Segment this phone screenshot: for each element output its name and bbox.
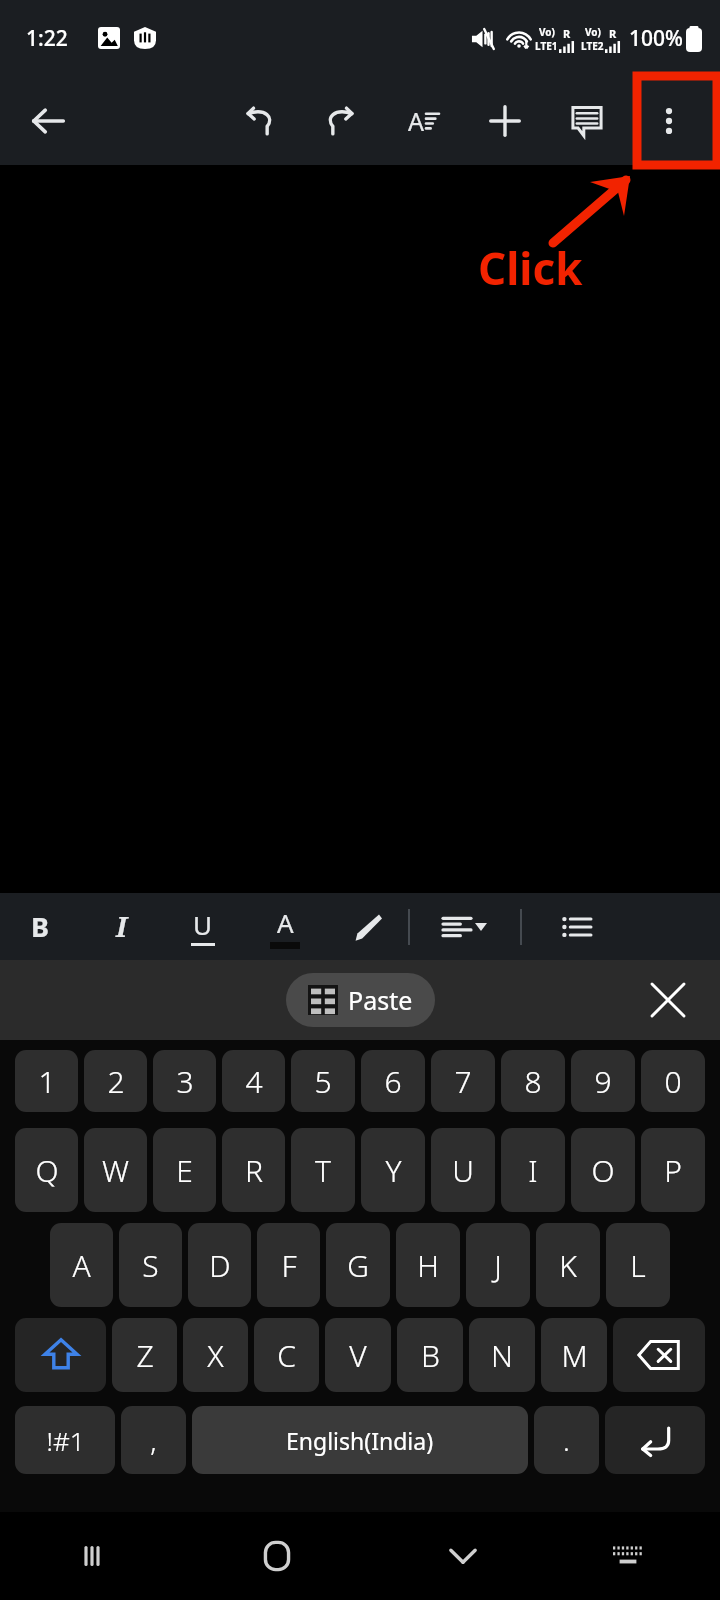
- staticText: U: [452, 1150, 474, 1191]
- button[interactable]: O: [571, 1128, 635, 1212]
- staticText: 7: [454, 1061, 472, 1102]
- staticText: D: [209, 1245, 231, 1286]
- button[interactable]: Bold: [0, 893, 80, 960]
- button[interactable]: M: [541, 1318, 607, 1392]
- staticText: 3: [176, 1061, 194, 1102]
- button[interactable]: 0: [641, 1050, 705, 1112]
- staticText: 0: [664, 1061, 682, 1102]
- staticText: P: [664, 1150, 682, 1191]
- staticText: S: [142, 1245, 159, 1286]
- button[interactable]: List: [522, 893, 632, 960]
- button[interactable]: Redo: [300, 76, 382, 165]
- button[interactable]: X: [183, 1318, 248, 1392]
- staticText: 1:22: [26, 24, 68, 53]
- button[interactable]: A: [50, 1223, 113, 1307]
- button[interactable]: More options: [628, 76, 710, 165]
- staticText: Q: [35, 1150, 59, 1191]
- staticText: A: [408, 104, 424, 138]
- button[interactable]: 8: [501, 1050, 565, 1112]
- button[interactable]: Home: [174, 1512, 380, 1600]
- staticText: F: [281, 1245, 297, 1286]
- button[interactable]: C: [254, 1318, 319, 1392]
- button[interactable]: 6: [361, 1050, 425, 1112]
- button[interactable]: 3: [153, 1050, 216, 1112]
- staticText: Click: [478, 238, 583, 298]
- staticText: ,: [150, 1421, 157, 1459]
- button[interactable]: Backspace: [613, 1318, 705, 1392]
- staticText: U: [193, 907, 213, 942]
- staticText: T: [315, 1150, 331, 1191]
- button[interactable]: S: [119, 1223, 182, 1307]
- button[interactable]: Highlight: [326, 893, 408, 960]
- button[interactable]: V: [325, 1318, 391, 1392]
- button[interactable]: English(India): [192, 1406, 528, 1474]
- button[interactable]: Underline: [162, 893, 244, 960]
- staticText: M: [561, 1335, 588, 1376]
- button[interactable]: 9: [571, 1050, 635, 1112]
- button[interactable]: D: [188, 1223, 251, 1307]
- button[interactable]: Paste: [286, 973, 435, 1027]
- button[interactable]: L: [606, 1223, 670, 1307]
- staticText: English(India): [286, 1425, 434, 1456]
- button[interactable]: G: [326, 1223, 390, 1307]
- button[interactable]: Keyboard layout: [545, 1512, 710, 1600]
- button[interactable]: R: [222, 1128, 285, 1212]
- button[interactable]: 5: [291, 1050, 355, 1112]
- button[interactable]: E: [153, 1128, 216, 1212]
- button[interactable]: T: [291, 1128, 355, 1212]
- button[interactable]: Undo: [218, 76, 300, 165]
- button[interactable]: H: [396, 1223, 460, 1307]
- staticText: E: [176, 1150, 193, 1191]
- staticText: X: [207, 1335, 224, 1376]
- button[interactable]: Text formatting: [382, 76, 464, 165]
- button[interactable]: Insert: [464, 76, 546, 165]
- button[interactable]: W: [84, 1128, 147, 1212]
- button[interactable]: ,: [121, 1406, 186, 1474]
- staticText: K: [559, 1245, 577, 1286]
- button[interactable]: 4: [222, 1050, 285, 1112]
- button[interactable]: K: [536, 1223, 600, 1307]
- button[interactable]: Shift: [15, 1318, 106, 1392]
- button[interactable]: J: [466, 1223, 530, 1307]
- button[interactable]: Q: [15, 1128, 78, 1212]
- button[interactable]: P: [641, 1128, 705, 1212]
- button[interactable]: !#1: [15, 1406, 115, 1474]
- staticText: 9: [594, 1061, 612, 1102]
- button[interactable]: 1: [15, 1050, 78, 1112]
- staticText: B: [421, 1335, 440, 1376]
- staticText: Paste: [348, 983, 413, 1017]
- button[interactable]: 7: [431, 1050, 495, 1112]
- button[interactable]: 2: [84, 1050, 147, 1112]
- button[interactable]: Y: [361, 1128, 425, 1212]
- button[interactable]: N: [469, 1318, 535, 1392]
- staticText: I: [528, 1150, 538, 1191]
- button[interactable]: U: [431, 1128, 495, 1212]
- button[interactable]: Italic: [80, 893, 162, 960]
- button[interactable]: F: [257, 1223, 320, 1307]
- staticText: Vo): [585, 25, 601, 39]
- button[interactable]: Hide keyboard: [380, 1512, 545, 1600]
- button[interactable]: Alignment: [410, 893, 520, 960]
- button[interactable]: I: [501, 1128, 565, 1212]
- button[interactable]: Text color: [244, 893, 326, 960]
- button[interactable]: Comment: [546, 76, 628, 165]
- button[interactable]: Close: [642, 974, 694, 1026]
- staticText: N: [491, 1335, 513, 1376]
- staticText: Z: [136, 1335, 154, 1376]
- staticText: C: [277, 1335, 296, 1376]
- staticText: .: [563, 1421, 570, 1459]
- button[interactable]: .: [534, 1406, 599, 1474]
- staticText: 8: [524, 1061, 542, 1102]
- staticText: R: [245, 1150, 263, 1191]
- button[interactable]: Z: [112, 1318, 177, 1392]
- button[interactable]: B: [397, 1318, 463, 1392]
- staticText: Vo): [539, 25, 555, 39]
- button[interactable]: Back: [16, 89, 80, 153]
- staticText: 6: [384, 1061, 402, 1102]
- staticText: !#1: [46, 1423, 85, 1458]
- button[interactable]: Recents: [10, 1512, 174, 1600]
- button[interactable]: Enter: [605, 1406, 705, 1474]
- staticText: G: [347, 1245, 369, 1286]
- staticText: R: [609, 26, 617, 41]
- staticText: R: [563, 26, 571, 41]
